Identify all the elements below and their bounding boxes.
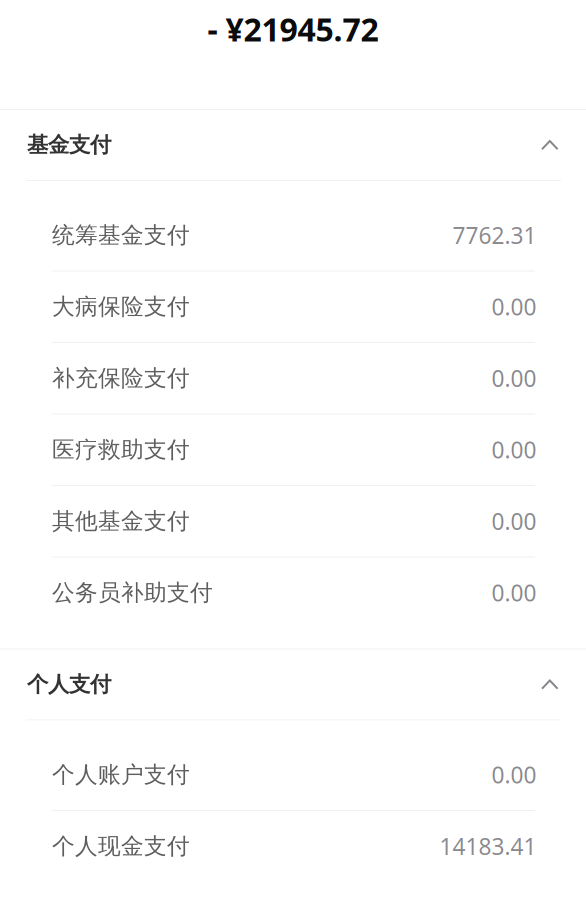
staticText: 其他基金支付 [52, 507, 190, 535]
staticText: 14183.41 [439, 831, 536, 861]
staticText: 基金支付 [27, 132, 111, 158]
staticText: 大病保险支付 [52, 293, 190, 321]
button[interactable]: 个人支付 [0, 649, 586, 719]
staticText: 公务员补助支付 [52, 579, 213, 607]
staticText: 补充保险支付 [52, 364, 190, 392]
staticText: 个人现金支付 [52, 832, 190, 860]
staticText: 医疗救助支付 [52, 436, 190, 464]
staticText: 0.00 [491, 506, 536, 536]
staticText: 0.00 [491, 435, 536, 465]
staticText: 0.00 [491, 292, 536, 322]
staticText: 统筹基金支付 [52, 221, 190, 249]
button[interactable]: 基金支付 [0, 110, 586, 180]
staticText: 个人支付 [27, 671, 111, 698]
staticText: 0.00 [491, 760, 536, 790]
staticText: 0.00 [491, 578, 536, 608]
staticText: 0.00 [491, 363, 536, 393]
staticText: 个人账户支付 [52, 761, 190, 789]
staticText: 7762.31 [452, 220, 536, 250]
staticText: - ¥21945.72 [207, 8, 378, 50]
